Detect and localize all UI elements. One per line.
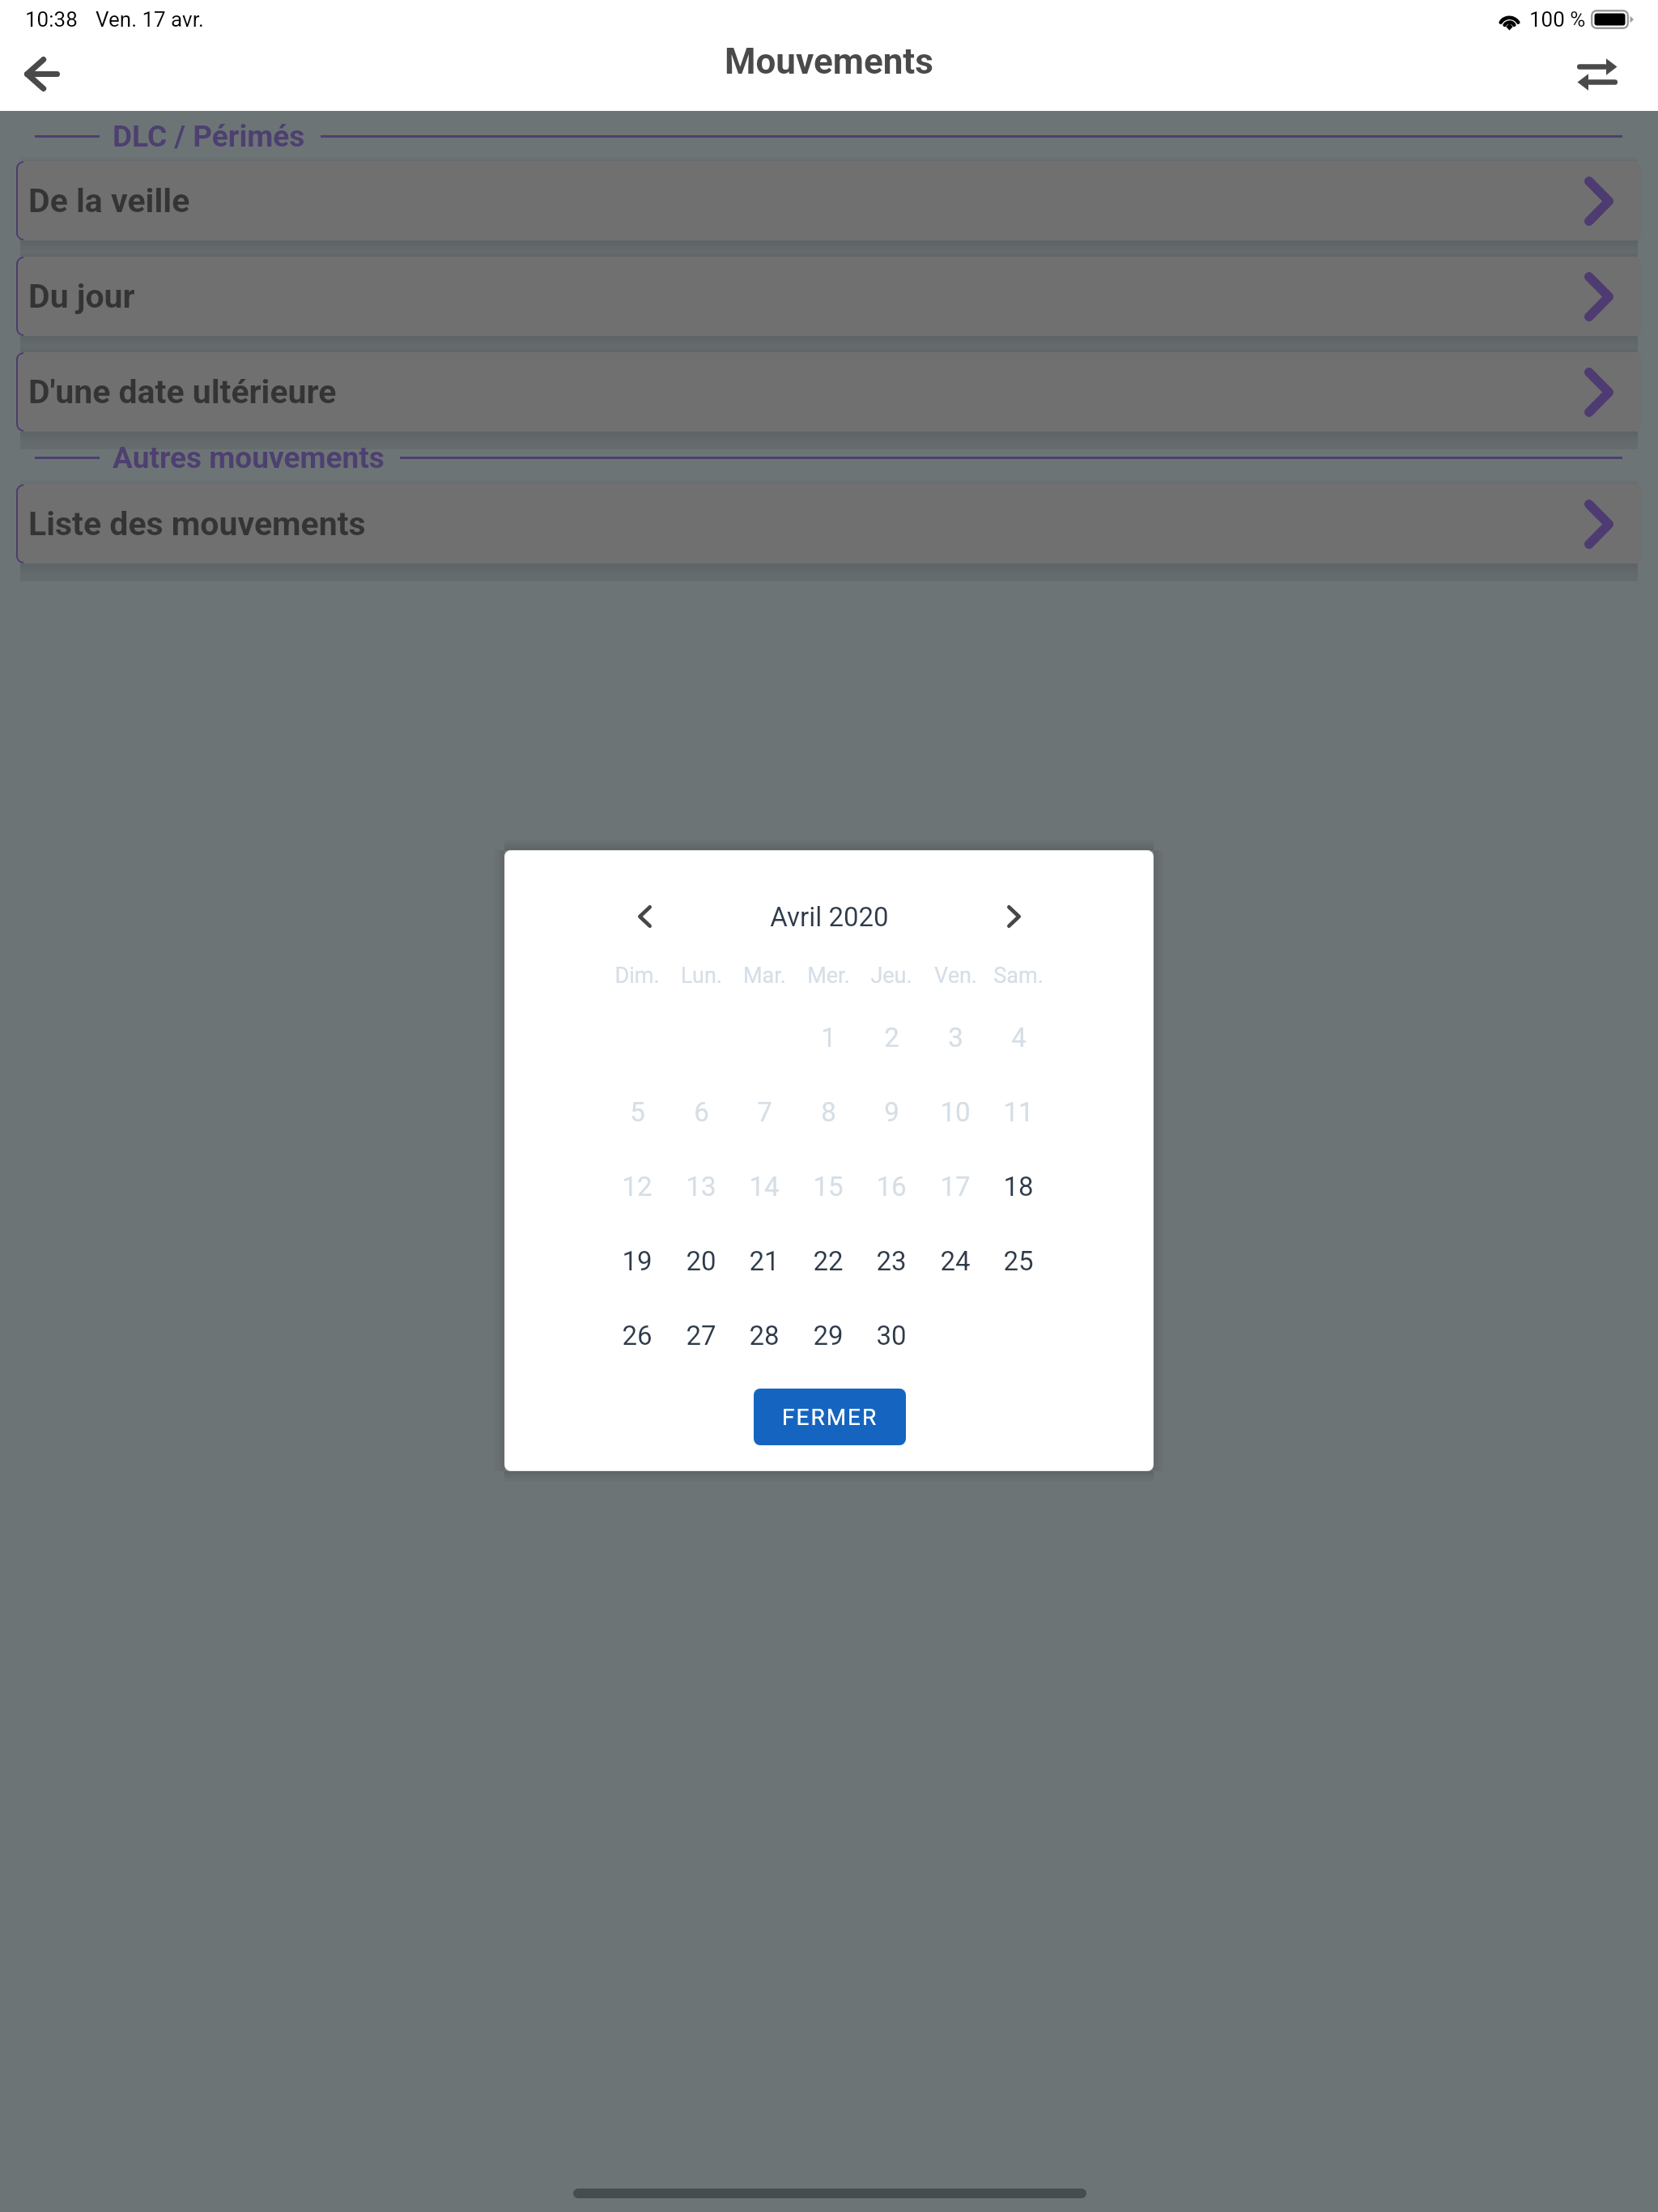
staticText: Autres mouvements: [113, 440, 385, 475]
button[interactable]: De la veille: [16, 161, 1642, 240]
button[interactable]: 10: [924, 1087, 987, 1136]
staticText: 22: [813, 1245, 844, 1277]
staticText: 8: [821, 1096, 836, 1128]
button[interactable]: 27: [670, 1311, 733, 1359]
button[interactable]: 7: [733, 1087, 796, 1136]
staticText: Ven. 17 avr.: [96, 7, 204, 32]
button[interactable]: 13: [670, 1162, 733, 1210]
staticText: Dim.: [614, 963, 660, 989]
button[interactable]: 8: [797, 1087, 860, 1136]
button[interactable]: 5: [606, 1087, 669, 1136]
button[interactable]: 23: [860, 1236, 923, 1285]
button[interactable]: 14: [733, 1162, 796, 1210]
staticText: 12: [622, 1171, 653, 1202]
button[interactable]: 11: [987, 1087, 1050, 1136]
button[interactable]: 21: [733, 1236, 796, 1285]
button[interactable]: 6: [670, 1087, 733, 1136]
button[interactable]: 16: [860, 1162, 923, 1210]
staticText: De la veille: [28, 181, 190, 220]
staticText: 100 %: [1529, 7, 1586, 32]
staticText: FERMER: [782, 1404, 878, 1431]
button[interactable]: FERMER: [754, 1389, 906, 1445]
staticText: Jeu.: [870, 963, 912, 989]
staticText: 10:38: [25, 7, 78, 32]
staticText: DLC / Périmés: [113, 119, 305, 154]
button[interactable]: 22: [797, 1236, 860, 1285]
button[interactable]: 24: [924, 1236, 987, 1285]
staticText: 19: [622, 1245, 653, 1277]
staticText: Ven.: [934, 963, 977, 989]
staticText: D'une date ultérieure: [28, 372, 337, 411]
staticText: 17: [940, 1171, 971, 1202]
staticText: 5: [630, 1096, 645, 1128]
staticText: 16: [876, 1171, 907, 1202]
staticText: 28: [749, 1320, 780, 1351]
staticText: Lun.: [681, 963, 722, 989]
staticText: Mer.: [807, 963, 850, 989]
button[interactable]: 28: [733, 1311, 796, 1359]
staticText: 9: [884, 1096, 899, 1128]
button[interactable]: 15: [797, 1162, 860, 1210]
staticText: 6: [694, 1096, 709, 1128]
staticText: 2: [884, 1022, 899, 1053]
staticText: 20: [686, 1245, 716, 1277]
staticText: 13: [686, 1171, 716, 1202]
button[interactable]: 26: [606, 1311, 669, 1359]
staticText: 23: [876, 1245, 907, 1277]
button[interactable]: Previous month: [612, 884, 677, 949]
button[interactable]: 3: [924, 1013, 987, 1061]
button[interactable]: 12: [606, 1162, 669, 1210]
staticText: Mouvements: [725, 40, 933, 83]
staticText: 30: [876, 1320, 907, 1351]
button[interactable]: Next month: [981, 884, 1046, 949]
button[interactable]: D'une date ultérieure: [16, 352, 1642, 432]
staticText: Avril 2020: [770, 901, 889, 933]
staticText: Liste des mouvements: [28, 504, 366, 543]
staticText: 21: [749, 1245, 780, 1277]
button[interactable]: 30: [860, 1311, 923, 1359]
staticText: 10: [940, 1096, 971, 1128]
staticText: 11: [1003, 1096, 1034, 1128]
staticText: 18: [1003, 1171, 1034, 1202]
staticText: 27: [686, 1320, 716, 1351]
button[interactable]: 25: [987, 1236, 1050, 1285]
button[interactable]: 2: [860, 1013, 923, 1061]
staticText: Mar.: [743, 963, 786, 989]
button[interactable]: 4: [987, 1013, 1050, 1061]
button[interactable]: 29: [797, 1311, 860, 1359]
staticText: 4: [1011, 1022, 1027, 1053]
staticText: 25: [1003, 1245, 1034, 1277]
staticText: 3: [948, 1022, 963, 1053]
staticText: Sam.: [993, 963, 1044, 989]
button[interactable]: 20: [670, 1236, 733, 1285]
button[interactable]: Transfer: [1561, 56, 1634, 92]
button[interactable]: 19: [606, 1236, 669, 1285]
staticText: 29: [813, 1320, 844, 1351]
staticText: 15: [813, 1171, 844, 1202]
staticText: Du jour: [28, 277, 135, 316]
button[interactable]: 18: [987, 1162, 1050, 1210]
staticText: 26: [622, 1320, 653, 1351]
button[interactable]: Du jour: [16, 257, 1642, 336]
button[interactable]: 17: [924, 1162, 987, 1210]
staticText: 24: [940, 1245, 971, 1277]
staticText: 1: [821, 1022, 836, 1053]
button[interactable]: 1: [797, 1013, 860, 1061]
button[interactable]: Back: [6, 56, 79, 92]
button[interactable]: 9: [860, 1087, 923, 1136]
staticText: 7: [757, 1096, 772, 1128]
staticText: 14: [749, 1171, 780, 1202]
button[interactable]: Liste des mouvements: [16, 484, 1642, 564]
